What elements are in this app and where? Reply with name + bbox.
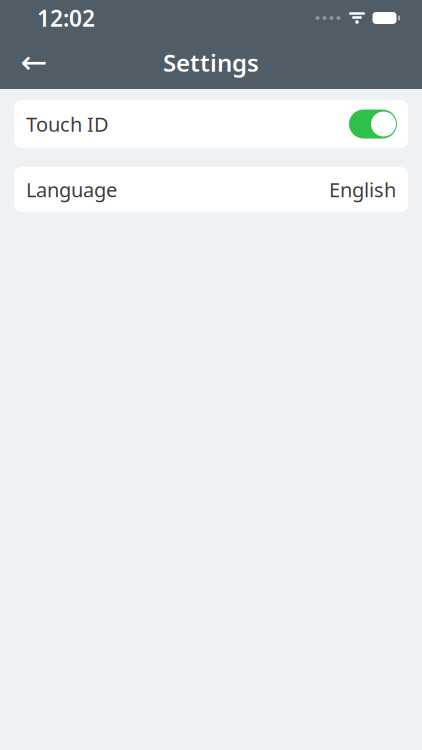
staticText: 12:02 — [37, 3, 95, 33]
staticText: English — [329, 176, 396, 203]
button[interactable]: Language — [14, 167, 408, 212]
staticText: Touch ID — [26, 111, 109, 137]
staticText: ← — [20, 44, 47, 81]
button[interactable]: Back — [12, 40, 56, 84]
staticText: Language — [26, 176, 117, 203]
staticText: Settings — [163, 47, 259, 78]
button[interactable]: Touch ID — [14, 100, 408, 148]
